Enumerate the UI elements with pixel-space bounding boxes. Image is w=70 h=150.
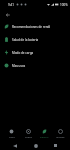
button[interactable]: Recomendaciones de rendi	[0, 20, 70, 33]
button[interactable]: Bateria	[36, 129, 52, 138]
staticText: 9:41	[8, 3, 14, 7]
button[interactable]: Modo de carga	[0, 46, 70, 59]
button[interactable]: Back	[9, 141, 20, 150]
staticText: Todos	[25, 135, 32, 138]
staticText: Recomendaciones de rendi	[12, 25, 51, 29]
button[interactable]: Ajustes	[52, 129, 68, 138]
button[interactable]: Mas usos	[0, 59, 70, 72]
staticText: Bateria	[40, 135, 49, 138]
staticText: 100%	[60, 3, 68, 7]
staticText: Casa	[9, 135, 15, 138]
staticText: Modo de carga	[12, 51, 34, 55]
staticText: Salud de la bateria	[12, 38, 39, 42]
button[interactable]: Casa	[3, 129, 20, 138]
staticText: Mas usos	[12, 64, 26, 68]
staticText: Ajustes	[56, 135, 65, 138]
button[interactable]: Back	[4, 11, 11, 18]
button[interactable]: Home	[30, 141, 41, 150]
button[interactable]: Recents	[50, 141, 61, 150]
button[interactable]: Todos	[20, 129, 36, 138]
button[interactable]: Salud de la bateria	[0, 33, 70, 46]
